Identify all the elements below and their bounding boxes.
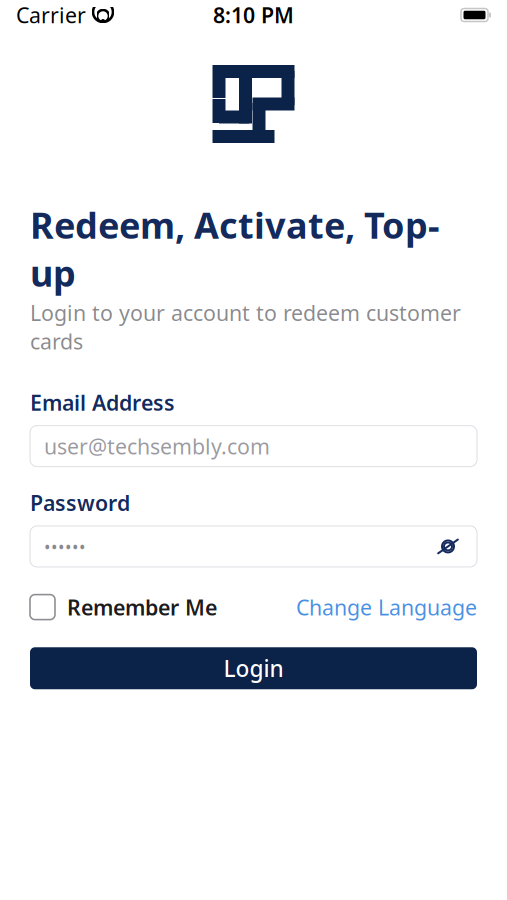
staticText: Remember Me bbox=[67, 593, 217, 621]
button[interactable]: Change Language bbox=[296, 593, 477, 621]
staticText: Email Address bbox=[30, 388, 175, 417]
button[interactable]: Remember Me bbox=[30, 593, 217, 621]
staticText: Login to your account to redeem customer… bbox=[30, 299, 461, 355]
staticText: Login bbox=[223, 653, 283, 683]
staticText: Carrier bbox=[16, 1, 86, 29]
staticText: Password bbox=[30, 489, 130, 517]
button[interactable]: Show password bbox=[433, 531, 463, 561]
staticText: •••••• bbox=[44, 535, 86, 558]
staticText: Redeem, Activate, Top-up bbox=[30, 201, 440, 297]
staticText: user@techsembly.com bbox=[44, 432, 270, 460]
button[interactable]: Login bbox=[30, 647, 477, 689]
staticText: 8:10 PM bbox=[213, 1, 294, 29]
staticText: Change Language bbox=[296, 593, 477, 621]
